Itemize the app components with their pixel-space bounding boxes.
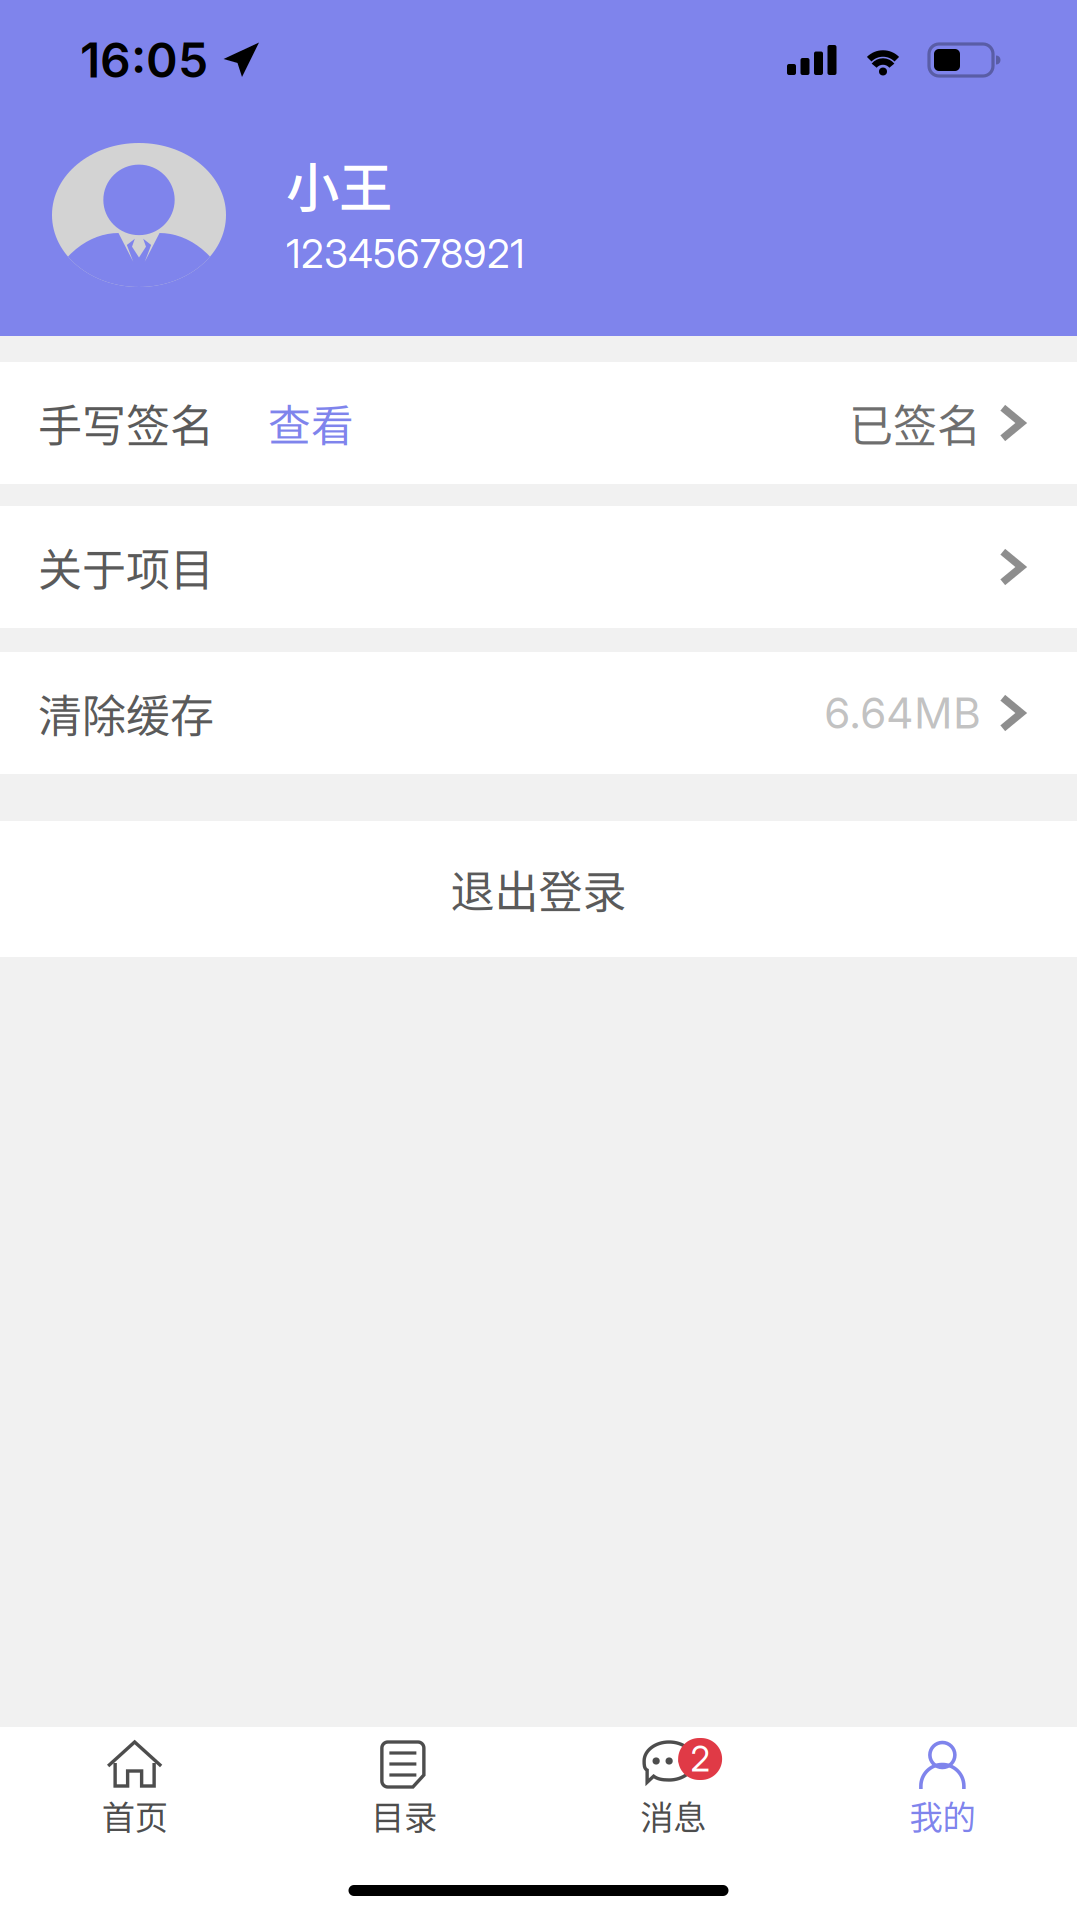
staticText: 我的 [909, 1791, 975, 1839]
staticText: 6.64MB [824, 687, 981, 739]
staticText: 关于项目 [38, 535, 214, 599]
staticText: 16:05 [80, 31, 208, 89]
staticText: 退出登录 [450, 857, 626, 921]
button[interactable]: 2 [538, 1727, 808, 1839]
staticText: 12345678921 [286, 229, 525, 278]
button[interactable]: 查看 [214, 392, 354, 454]
button[interactable]: 目录 [269, 1727, 538, 1839]
button[interactable]: 我的 [808, 1727, 1077, 1839]
button[interactable]: 关于项目 [0, 506, 1077, 628]
staticText: 小王 [286, 146, 392, 223]
staticText: 清除缓存 [38, 681, 214, 745]
button[interactable]: 首页 [0, 1727, 269, 1839]
staticText: 2 [690, 1738, 710, 1780]
staticText: 消息 [640, 1791, 706, 1839]
staticText: 查看 [268, 392, 354, 454]
button[interactable]: 手写签名 [0, 362, 1077, 484]
staticText: 首页 [102, 1791, 168, 1839]
staticText: 目录 [371, 1791, 437, 1839]
button[interactable]: 退出登录 [0, 821, 1077, 957]
button[interactable]: 清除缓存 [0, 652, 1077, 774]
staticText: 已签名 [849, 391, 981, 455]
staticText: 手写签名 [38, 391, 214, 455]
